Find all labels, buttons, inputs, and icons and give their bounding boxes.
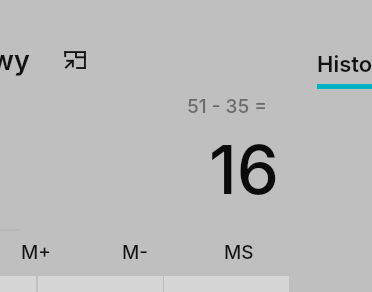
button[interactable]: Naukowy bbox=[0, 44, 30, 77]
staticText: M- bbox=[122, 241, 149, 264]
staticText: M+ bbox=[21, 241, 52, 264]
button[interactable]: 16 bbox=[0, 129, 280, 210]
staticText: Naukowy bbox=[0, 44, 30, 77]
button[interactable]: MS bbox=[210, 232, 268, 273]
button[interactable]: Historia bbox=[317, 51, 372, 78]
staticText: Historia bbox=[317, 51, 372, 78]
staticText: MS bbox=[224, 241, 254, 264]
button[interactable]: Keep on top bbox=[56, 42, 90, 76]
staticText: 51 - 35 = bbox=[187, 95, 267, 118]
staticText: 16 bbox=[209, 129, 280, 210]
button[interactable]: M- bbox=[108, 232, 163, 273]
button[interactable]: M+ bbox=[7, 232, 66, 273]
button[interactable]: 51 - 35 = bbox=[0, 95, 267, 118]
